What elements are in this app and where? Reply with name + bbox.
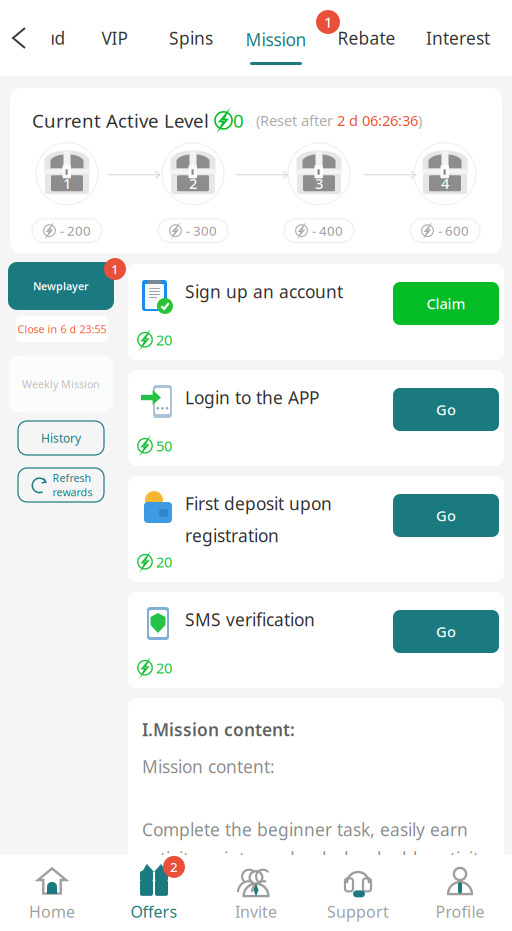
button[interactable]: ıd [38,0,78,76]
button[interactable]: History [18,421,104,455]
staticText: Sign up an account [185,280,343,303]
staticText: - 600 [438,222,469,239]
staticText: 20 [156,658,172,677]
staticText: Offers [130,901,177,922]
staticText: 2 [189,174,197,193]
staticText: Profile [435,901,484,922]
staticText: (Reset after [244,111,337,130]
button[interactable]: Go [393,494,499,537]
button[interactable]: Go [393,388,499,431]
staticText: 1 [111,260,119,278]
staticText: registration [185,524,279,547]
staticText: - 400 [312,222,343,239]
staticText: 2 d 06:26:36 [337,111,418,130]
staticText: Mission [245,28,306,51]
staticText: Spins [169,26,213,49]
staticText: 50 [156,436,172,455]
button[interactable]: Close in 6 d 23:55 [8,262,128,344]
staticText: 3 [315,174,323,193]
staticText: ) [418,111,422,130]
staticText: activity points, and unlock valuable act… [142,847,488,870]
button[interactable]: Spins [151,0,231,76]
staticText: SMS verification [185,608,315,631]
button[interactable]: Interest [412,0,504,76]
staticText: Go [436,506,456,525]
staticText: 20 [156,330,172,349]
staticText: 4 [441,174,449,193]
staticText: Newplayer [33,279,89,293]
button[interactable]: VIP [78,0,151,76]
staticText: Login to the APP [185,386,319,409]
button[interactable]: Mission [231,0,321,76]
button[interactable]: Claim [393,282,499,325]
staticText: Weekly Mission [22,377,100,391]
staticText: History [41,430,81,446]
staticText: Go [436,622,456,641]
staticText: Complete the beginner task, easily earn [142,818,468,841]
staticText: First deposit upon [185,492,332,515]
button[interactable]: Support [307,855,409,931]
staticText: Interest [426,26,490,49]
staticText: 2 [170,858,178,876]
staticText: Rebate [337,26,395,49]
staticText: 0 [233,108,244,133]
staticText: ıd [50,26,65,49]
staticText: Mission content: [142,755,275,778]
staticText: rewards [52,485,92,499]
staticText: Invite [235,901,277,922]
button[interactable]: Invite [205,855,307,931]
staticText: 1 [63,174,71,193]
button[interactable]: Profile [409,855,511,931]
staticText: VIP [101,26,127,49]
button[interactable]: Refresh [18,468,104,502]
staticText: Home [29,901,75,922]
button[interactable]: 2 [103,855,205,931]
staticText: - 200 [60,222,91,239]
staticText: Claim [426,294,465,313]
staticText: Refresh [52,471,91,485]
staticText: 20 [156,552,172,571]
button[interactable]: Back [0,0,38,76]
staticText: Go [436,400,456,419]
button[interactable]: Weekly Mission [9,356,113,412]
button[interactable]: Go [393,610,499,653]
staticText: Support [327,901,389,922]
staticText: I.Mission content: [142,718,295,741]
staticText: - 300 [186,222,217,239]
button[interactable]: Rebate [321,0,412,76]
staticText: Close in 6 d 23:55 [17,322,106,336]
staticText: 1 [324,12,332,32]
button[interactable]: Home [1,855,103,931]
staticText: Current Active Level [32,108,209,133]
